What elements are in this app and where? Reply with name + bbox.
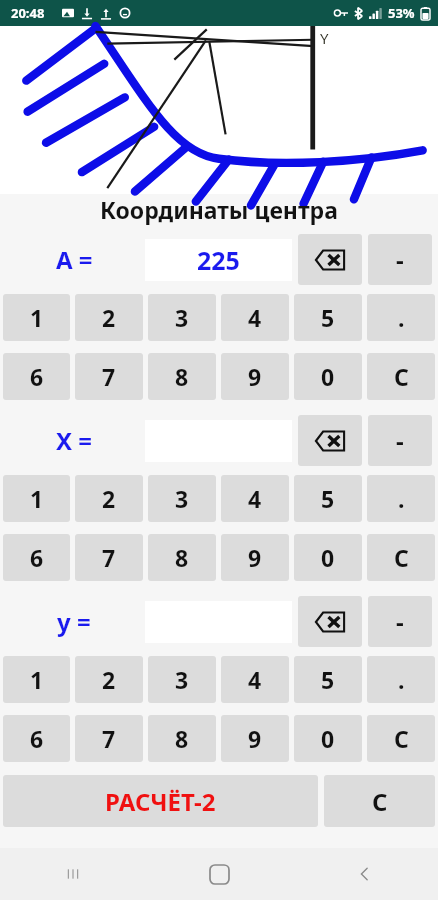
- staticText: 3: [175, 483, 189, 514]
- button[interactable]: C: [367, 534, 435, 581]
- staticText: -: [396, 605, 404, 638]
- button[interactable]: 8: [148, 715, 216, 762]
- button[interactable]: .: [367, 656, 435, 703]
- staticText: y =: [57, 605, 91, 638]
- staticText: 1: [30, 483, 44, 514]
- button[interactable]: 5: [294, 475, 362, 522]
- staticText: 2: [102, 483, 116, 514]
- staticText: 9: [248, 542, 262, 573]
- staticText: 9: [248, 361, 262, 392]
- button[interactable]: 0: [294, 353, 362, 400]
- staticText: 3: [175, 664, 189, 695]
- button[interactable]: Back: [292, 848, 438, 900]
- staticText: 2: [102, 302, 116, 333]
- button[interactable]: 9: [221, 353, 289, 400]
- button[interactable]: .: [367, 475, 435, 522]
- staticText: 5: [321, 302, 335, 333]
- button[interactable]: C: [367, 715, 435, 762]
- button[interactable]: 4: [221, 294, 289, 341]
- staticText: 5: [321, 664, 335, 695]
- staticText: 0: [321, 542, 335, 573]
- staticText: A =: [56, 243, 93, 276]
- staticText: 53%: [388, 4, 415, 22]
- button[interactable]: 1: [3, 475, 70, 522]
- button[interactable]: .: [367, 294, 435, 341]
- button[interactable]: 3: [148, 656, 216, 703]
- button[interactable]: 2: [75, 656, 143, 703]
- button[interactable]: 4: [221, 656, 289, 703]
- button[interactable]: 6: [3, 534, 70, 581]
- button[interactable]: 2: [75, 294, 143, 341]
- button[interactable]: 6: [3, 715, 70, 762]
- button[interactable]: 0: [294, 715, 362, 762]
- button[interactable]: 8: [148, 534, 216, 581]
- staticText: 6: [30, 723, 44, 754]
- staticText: C: [372, 785, 388, 818]
- staticText: РАСЧЁТ-2: [105, 785, 216, 818]
- button[interactable]: Backspace: [298, 415, 362, 466]
- staticText: 4: [248, 302, 262, 333]
- button[interactable]: РАСЧЁТ-2: [3, 775, 318, 827]
- staticText: X =: [56, 424, 93, 457]
- button[interactable]: 3: [148, 475, 216, 522]
- button[interactable]: C: [367, 353, 435, 400]
- staticText: Координаты центра: [0, 194, 438, 225]
- button[interactable]: 5: [294, 656, 362, 703]
- button[interactable]: 9: [221, 715, 289, 762]
- staticText: C: [394, 723, 409, 754]
- button[interactable]: Home: [146, 848, 292, 900]
- staticText: .: [398, 664, 405, 695]
- staticText: .: [398, 483, 405, 514]
- button[interactable]: 4: [221, 475, 289, 522]
- staticText: C: [394, 361, 409, 392]
- staticText: -: [396, 243, 404, 276]
- staticText: 8: [175, 723, 189, 754]
- button[interactable]: 7: [75, 534, 143, 581]
- staticText: 3: [175, 302, 189, 333]
- button[interactable]: Backspace: [298, 234, 362, 285]
- button[interactable]: 8: [148, 353, 216, 400]
- button[interactable]: 7: [75, 353, 143, 400]
- staticText: 1: [30, 302, 44, 333]
- staticText: 8: [175, 361, 189, 392]
- staticText: 7: [102, 361, 116, 392]
- button[interactable]: 225: [145, 239, 292, 281]
- button[interactable]: 0: [294, 534, 362, 581]
- button[interactable]: 1: [3, 294, 70, 341]
- staticText: 6: [30, 542, 44, 573]
- staticText: 20:48: [11, 4, 45, 22]
- button[interactable]: 1: [3, 656, 70, 703]
- staticText: Y: [320, 28, 329, 48]
- button[interactable]: 5: [294, 294, 362, 341]
- staticText: 6: [30, 361, 44, 392]
- staticText: 9: [248, 723, 262, 754]
- staticText: 7: [102, 542, 116, 573]
- button[interactable]: Recents: [0, 848, 146, 900]
- staticText: 4: [248, 483, 262, 514]
- button[interactable]: 3: [148, 294, 216, 341]
- staticText: 4: [248, 664, 262, 695]
- staticText: 5: [321, 483, 335, 514]
- button[interactable]: Backspace: [298, 596, 362, 647]
- staticText: 225: [197, 243, 240, 277]
- staticText: -: [396, 424, 404, 457]
- staticText: 8: [175, 542, 189, 573]
- button[interactable]: -: [368, 415, 432, 466]
- staticText: C: [394, 542, 409, 573]
- staticText: 0: [321, 361, 335, 392]
- button[interactable]: 6: [3, 353, 70, 400]
- staticText: 2: [102, 664, 116, 695]
- button[interactable]: 7: [75, 715, 143, 762]
- button[interactable]: -: [368, 234, 432, 285]
- staticText: .: [398, 302, 405, 333]
- staticText: 0: [321, 723, 335, 754]
- staticText: 1: [30, 664, 44, 695]
- button[interactable]: -: [368, 596, 432, 647]
- button[interactable]: C: [324, 775, 435, 827]
- button[interactable]: 2: [75, 475, 143, 522]
- staticText: 7: [102, 723, 116, 754]
- button[interactable]: 9: [221, 534, 289, 581]
